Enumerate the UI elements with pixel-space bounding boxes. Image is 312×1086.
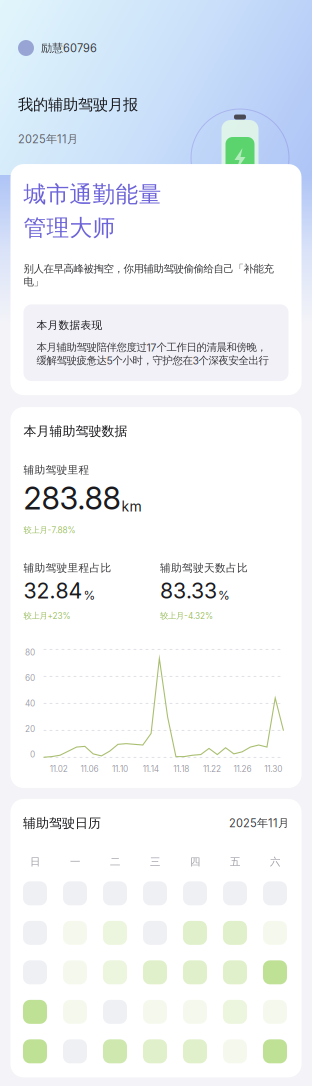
staticText: 本月数据表现 <box>36 318 102 332</box>
staticText: 较上月-7.88% <box>23 525 75 535</box>
staticText: 辅助驾驶里程 <box>23 463 89 477</box>
staticText: 32.84 <box>23 578 82 603</box>
staticText: 11.26 <box>234 764 252 774</box>
staticText: 40 <box>25 698 35 708</box>
button[interactable]: 励慧60796 <box>18 40 97 56</box>
staticText: 20 <box>25 724 35 734</box>
staticText: 五 <box>230 855 240 868</box>
staticText: 60 <box>25 673 35 683</box>
staticText: 六 <box>270 855 280 868</box>
staticText: 辅助驾驶里程占比 <box>23 561 111 575</box>
staticText: 管理大师 <box>23 214 115 242</box>
staticText: 本月辅助驾驶陪伴您度过17个工作日的清晨和傍晚， 缓解驾驶疲惫达5个小时，守护您… <box>36 341 268 367</box>
staticText: % <box>83 588 95 602</box>
staticText: 三 <box>150 855 160 868</box>
staticText: 83.33 <box>160 578 217 603</box>
staticText: 我的辅助驾驶月报 <box>18 95 138 114</box>
staticText: 2025年11月 <box>229 816 289 830</box>
staticText: 四 <box>190 855 200 868</box>
staticText: 较上月+23% <box>23 610 70 621</box>
staticText: 11.22 <box>203 764 221 774</box>
staticText: 辅助驾驶天数占比 <box>160 561 248 575</box>
staticText: 辅助驾驶日历 <box>23 815 101 831</box>
staticText: % <box>218 588 230 602</box>
staticText: 0 <box>30 749 35 759</box>
staticText: 2025年11月 <box>18 132 78 146</box>
staticText: 11.10 <box>112 764 128 774</box>
staticText: 二 <box>110 855 120 868</box>
staticText: 11.30 <box>264 764 282 774</box>
staticText: 11.18 <box>173 764 189 774</box>
staticText: 11.02 <box>50 764 68 774</box>
staticText: 较上月-4.32% <box>160 610 213 621</box>
staticText: 11.14 <box>143 764 159 774</box>
staticText: 励慧60796 <box>41 41 97 55</box>
staticText: 城市通勤能量 <box>23 180 161 209</box>
staticText: 日 <box>30 855 40 868</box>
staticText: 80 <box>25 647 35 657</box>
staticText: 别人在早高峰被掏空，你用辅助驾驶偷偷给自己「补能充电」 <box>23 262 273 288</box>
staticText: 本月辅助驾驶数据 <box>23 423 127 439</box>
staticText: 11.06 <box>80 764 98 774</box>
staticText: 283.88 <box>23 480 120 517</box>
staticText: km <box>121 498 141 515</box>
staticText: 一 <box>70 855 80 868</box>
